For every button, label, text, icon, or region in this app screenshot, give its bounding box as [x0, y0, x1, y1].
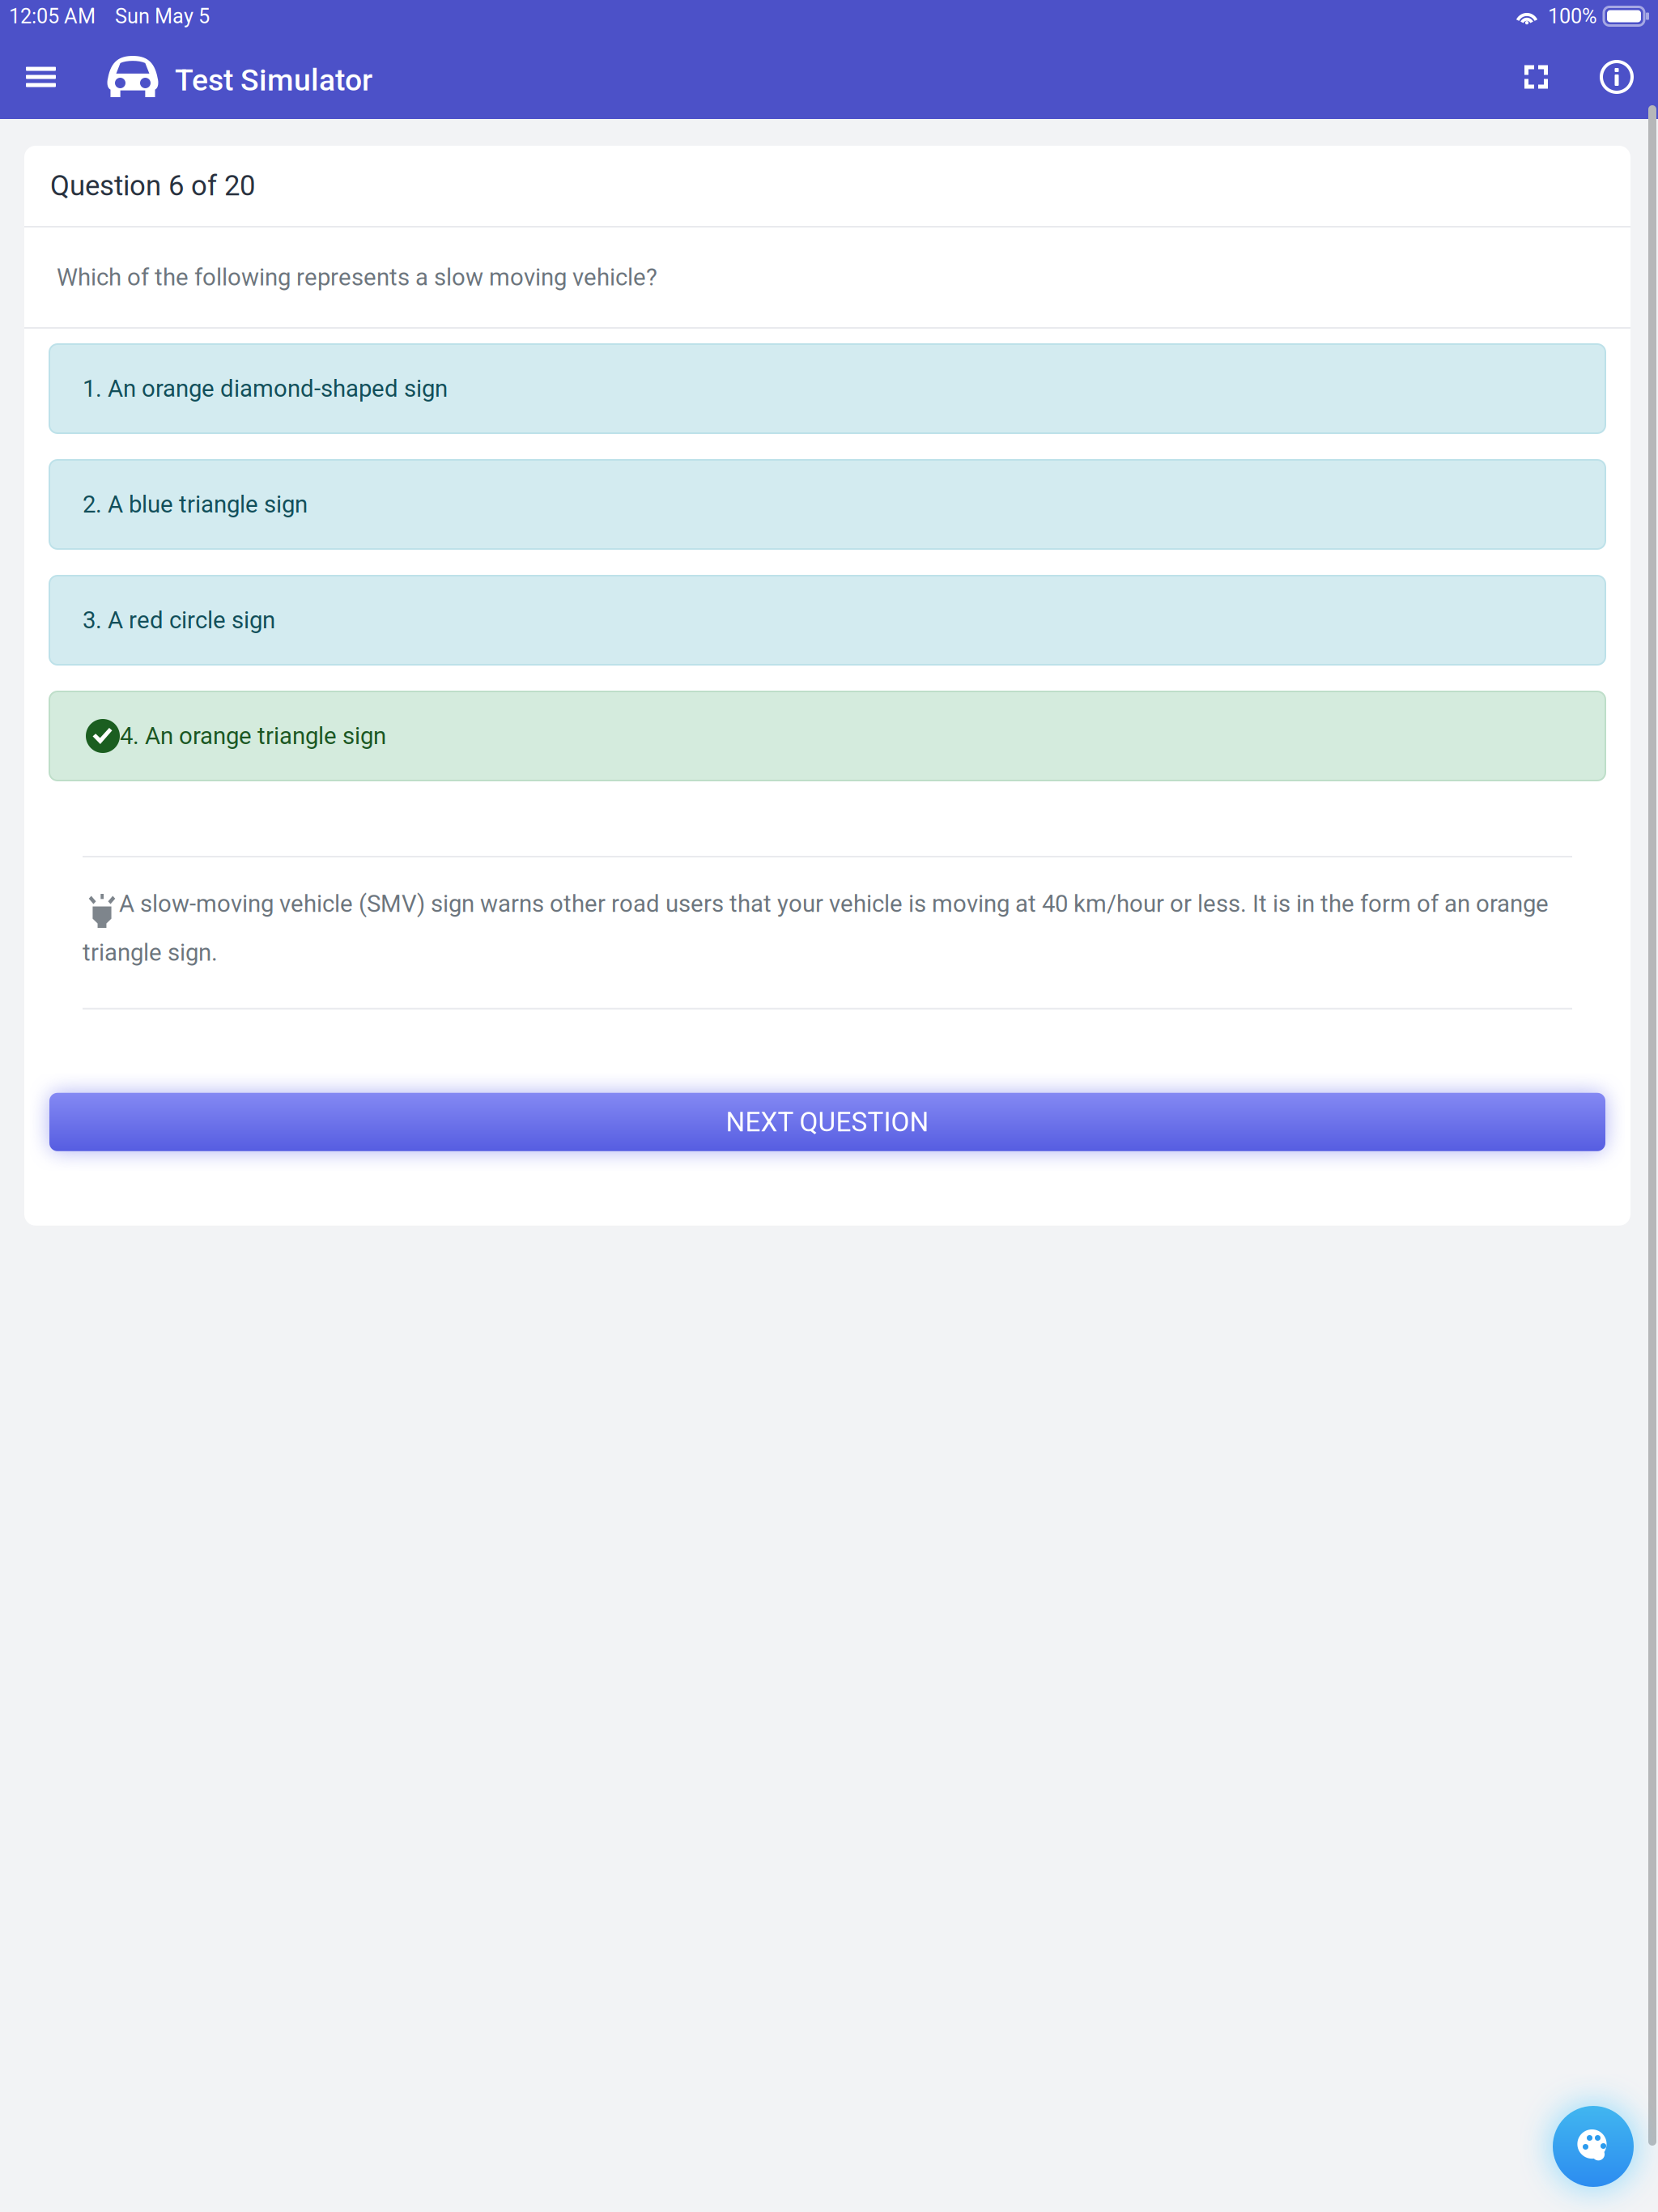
staticText: 1. An orange diamond-shaped sign	[83, 375, 448, 403]
button[interactable]: Menu	[8, 43, 74, 111]
staticText: 4. An orange triangle sign	[120, 722, 386, 750]
button[interactable]: 3. A red circle sign	[49, 576, 1605, 665]
staticText: Which of the following represents a slow…	[57, 263, 657, 291]
staticText: A slow-moving vehicle (SMV) sign warns o…	[83, 890, 1549, 966]
button[interactable]: 2. A blue triangle sign	[49, 460, 1605, 549]
staticText: 2. A blue triangle sign	[83, 490, 308, 518]
staticText: 12:05 AM	[9, 4, 96, 28]
button[interactable]: 4. An orange triangle sign	[49, 691, 1605, 781]
staticText: Sun May 5	[115, 4, 210, 28]
staticText: 3. A red circle sign	[83, 606, 275, 634]
button[interactable]: Information	[1582, 43, 1652, 111]
staticText: Question 6 of 20	[50, 169, 255, 202]
button[interactable]: Change theme	[1553, 2106, 1634, 2187]
button[interactable]: 1. An orange diamond-shaped sign	[49, 344, 1605, 433]
staticText: NEXT QUESTION	[726, 1106, 929, 1138]
staticText: Test Simulator	[175, 62, 372, 98]
button[interactable]: Full screen	[1513, 43, 1582, 111]
button[interactable]: NEXT QUESTION	[49, 1093, 1605, 1151]
staticText: 100%	[1548, 4, 1597, 28]
